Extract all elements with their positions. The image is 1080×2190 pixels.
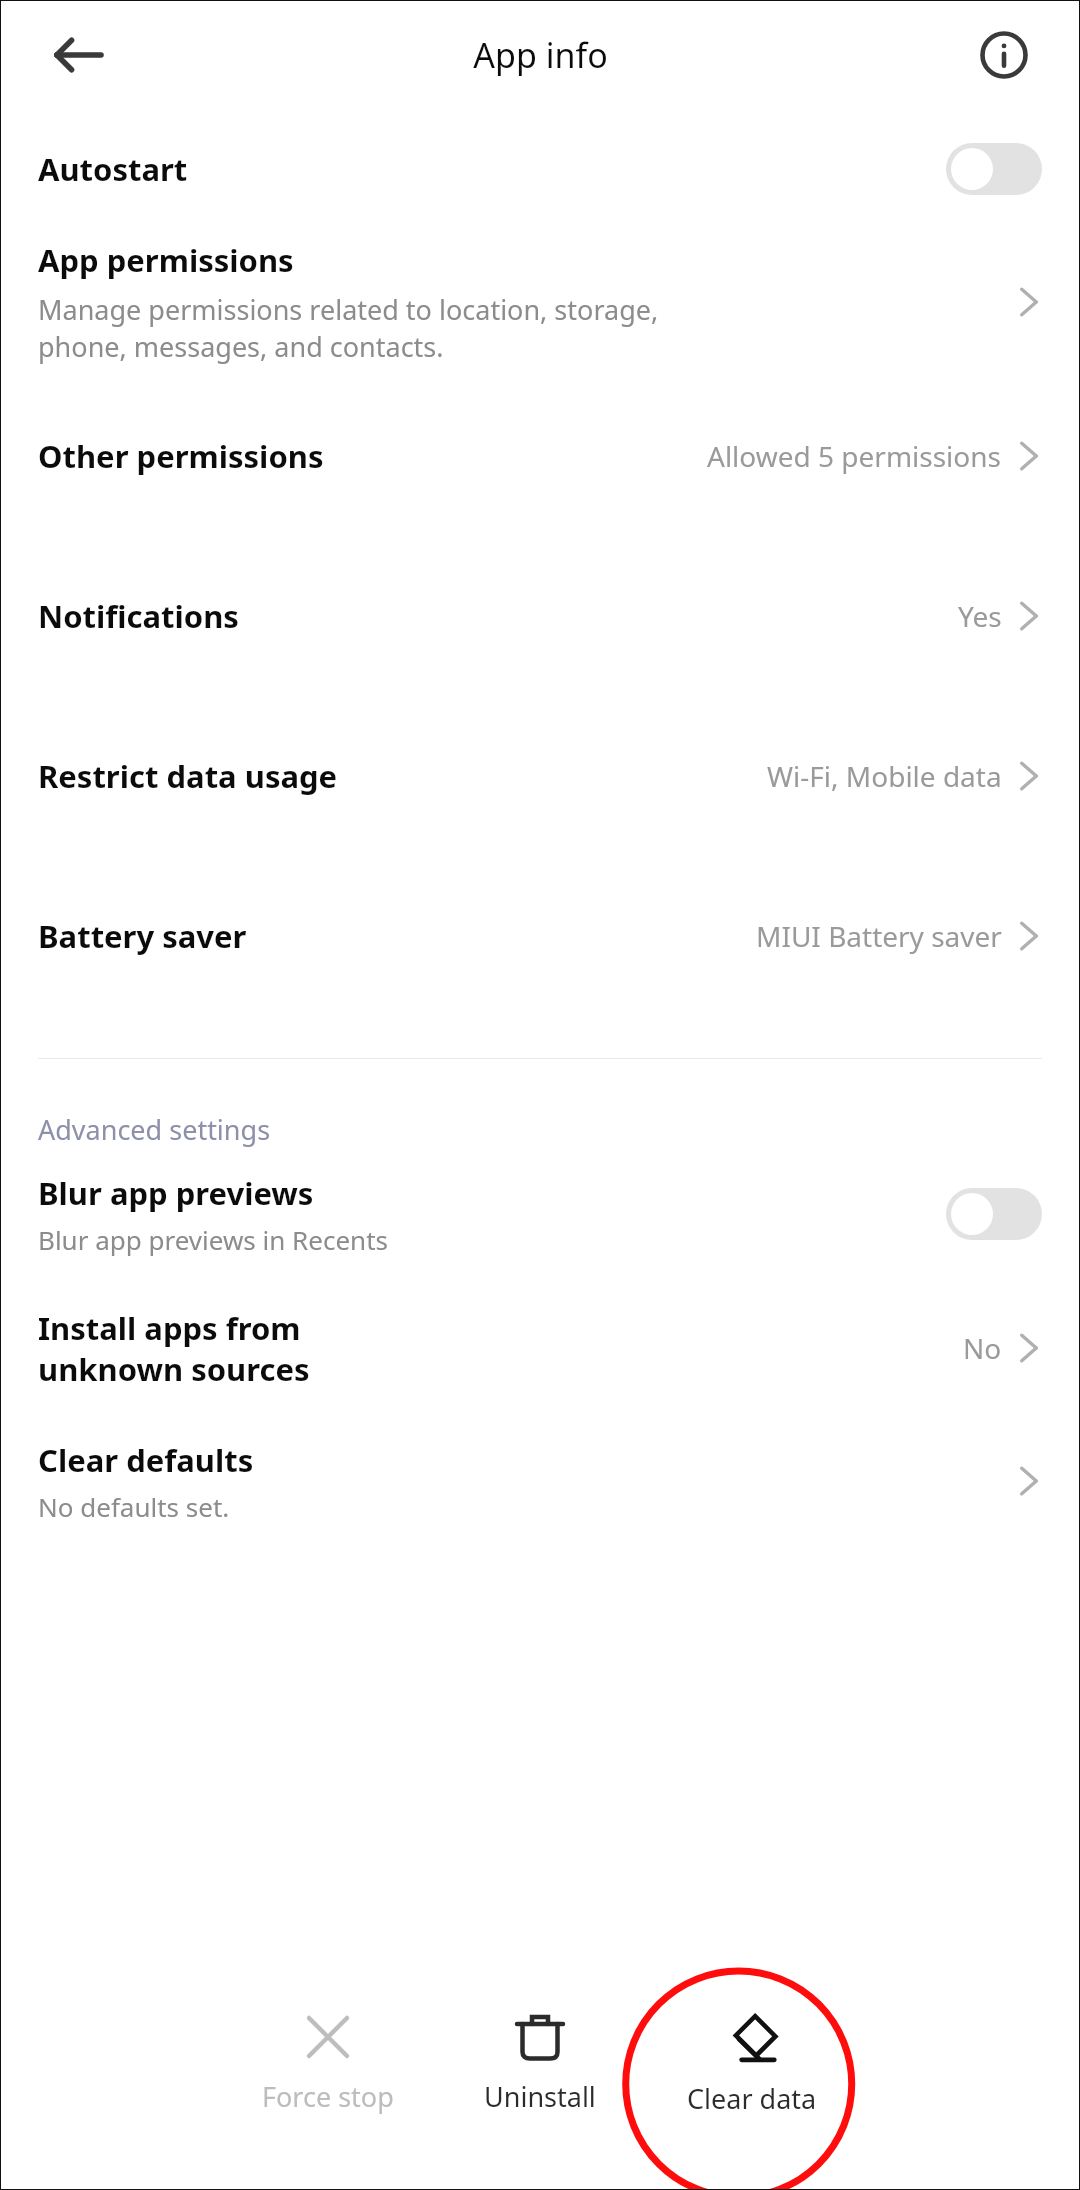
staticText: MIUI Battery saver bbox=[756, 917, 1002, 955]
button[interactable]: Battery saver bbox=[0, 856, 1080, 1016]
staticText: Blur app previews in Recents bbox=[38, 1222, 388, 1257]
staticText: Manage permissions related to location, … bbox=[38, 291, 659, 365]
staticText: Force stop bbox=[262, 2078, 394, 2115]
button[interactable]: Force stop bbox=[233, 1990, 423, 2115]
button[interactable]: Toggle bbox=[946, 1188, 1042, 1240]
staticText: App info bbox=[473, 32, 608, 78]
button[interactable]: Notifications bbox=[0, 536, 1080, 696]
staticText: No bbox=[963, 1329, 1002, 1367]
staticText: Advanced settings bbox=[38, 1111, 271, 1148]
staticText: Uninstall bbox=[484, 2078, 596, 2115]
button[interactable]: Restrict data usage bbox=[0, 696, 1080, 856]
staticText: Clear defaults bbox=[38, 1439, 254, 1481]
button[interactable]: Clear data bbox=[657, 1990, 847, 2117]
staticText: Install apps from unknown sources bbox=[38, 1307, 963, 1390]
staticText: App permissions bbox=[38, 239, 294, 281]
staticText: Other permissions bbox=[38, 435, 707, 477]
button[interactable]: Install apps from unknown sources bbox=[0, 1280, 1080, 1416]
button[interactable]: Clear defaults bbox=[0, 1416, 1080, 1546]
staticText: Battery saver bbox=[38, 915, 756, 957]
button[interactable]: Uninstall bbox=[445, 1990, 635, 2115]
staticText: Blur app previews bbox=[38, 1172, 314, 1214]
staticText: No defaults set. bbox=[38, 1489, 230, 1524]
staticText: Allowed 5 permissions bbox=[707, 437, 1002, 475]
staticText: Restrict data usage bbox=[38, 755, 767, 797]
staticText: Clear data bbox=[687, 2080, 817, 2117]
button[interactable]: Blur app previews bbox=[0, 1148, 1080, 1280]
button[interactable]: Back bbox=[46, 23, 110, 87]
staticText: Autostart bbox=[38, 148, 946, 190]
button[interactable]: App permissions bbox=[0, 228, 1080, 376]
staticText: Yes bbox=[958, 597, 1002, 635]
button[interactable]: Other permissions bbox=[0, 376, 1080, 536]
staticText: Notifications bbox=[38, 595, 958, 637]
button[interactable]: App details bbox=[974, 25, 1034, 85]
button[interactable]: Toggle bbox=[946, 143, 1042, 195]
button[interactable]: Autostart bbox=[0, 110, 1080, 228]
staticText: Wi-Fi, Mobile data bbox=[767, 757, 1002, 795]
